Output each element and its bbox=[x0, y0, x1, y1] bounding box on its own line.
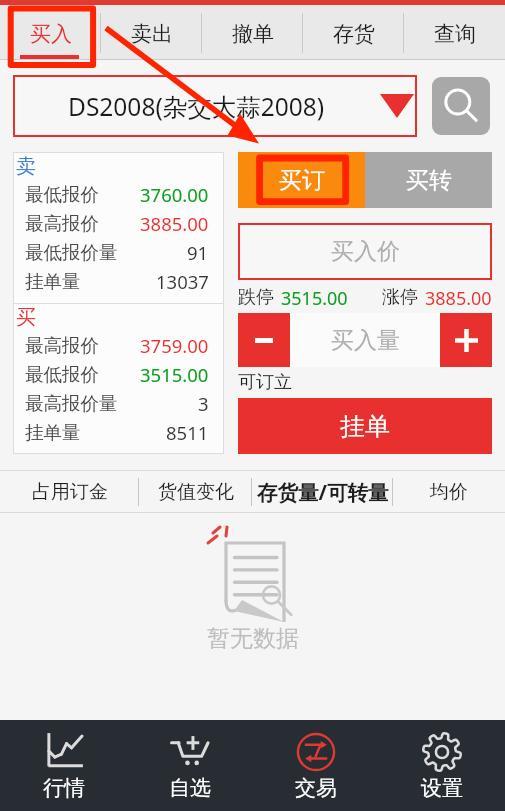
staticText: 最高报价 bbox=[25, 212, 99, 235]
staticText: 均价 bbox=[430, 480, 468, 504]
button[interactable]: 买入价 bbox=[238, 223, 492, 280]
staticText: 买转 bbox=[406, 166, 452, 195]
staticText: 行情 bbox=[43, 775, 85, 801]
staticText: 存货 bbox=[333, 21, 375, 47]
staticText: 买入量 bbox=[331, 326, 400, 355]
staticText: 3515.00 bbox=[281, 286, 348, 308]
button[interactable]: 挂单 bbox=[238, 398, 492, 454]
staticText: 13037 bbox=[156, 269, 209, 294]
staticText: 存货量/可转量 bbox=[257, 478, 389, 506]
button[interactable]: 买入 bbox=[0, 5, 101, 60]
button[interactable]: 占用订金 bbox=[0, 470, 139, 513]
button[interactable]: DS2008(杂交大蒜2008) bbox=[13, 75, 417, 137]
button[interactable]: 卖出 bbox=[101, 5, 202, 60]
button[interactable]: 买入量 bbox=[290, 313, 440, 367]
staticText: 查询 bbox=[434, 21, 476, 47]
staticText: 最低报价 bbox=[25, 363, 99, 386]
staticText: 买 bbox=[16, 305, 36, 330]
staticText: 买订 bbox=[279, 166, 325, 195]
staticText: 3515.00 bbox=[140, 362, 209, 387]
staticText: 挂单量 bbox=[25, 270, 81, 293]
staticText: 买入价 bbox=[331, 237, 400, 266]
button[interactable]: 自选 bbox=[127, 720, 253, 811]
staticText: 卖 bbox=[16, 154, 36, 179]
staticText: 3759.00 bbox=[140, 333, 209, 358]
staticText: 8511 bbox=[166, 420, 209, 445]
button[interactable]: 存货量/可转量 bbox=[252, 470, 393, 513]
button[interactable]: 行情 bbox=[0, 720, 127, 811]
staticText: 3885.00 bbox=[140, 211, 209, 236]
staticText: 挂单量 bbox=[25, 421, 81, 444]
staticText: 占用订金 bbox=[32, 480, 108, 504]
staticText: 最低报价量 bbox=[25, 241, 118, 264]
staticText: 卖出 bbox=[131, 21, 173, 47]
button[interactable]: 均价 bbox=[393, 470, 505, 513]
button[interactable]: 存货 bbox=[303, 5, 404, 60]
button[interactable]: Decrease bbox=[238, 313, 290, 367]
button[interactable]: 撤单 bbox=[202, 5, 303, 60]
staticText: 最低报价 bbox=[25, 183, 99, 206]
staticText: 3760.00 bbox=[140, 182, 209, 207]
staticText: 91 bbox=[187, 240, 209, 265]
staticText: 最高报价量 bbox=[25, 392, 118, 415]
staticText: 自选 bbox=[169, 775, 211, 801]
staticText: 交易 bbox=[295, 775, 337, 801]
staticText: 涨停 bbox=[382, 286, 418, 308]
button[interactable]: Search bbox=[432, 77, 490, 135]
staticText: 3 bbox=[198, 391, 209, 416]
staticText: 3885.00 bbox=[425, 286, 492, 308]
button[interactable]: 查询 bbox=[404, 5, 505, 60]
staticText: 可订立 bbox=[238, 371, 292, 393]
staticText: DS2008(杂交大蒜2008) bbox=[68, 90, 325, 123]
staticText: 最高报价 bbox=[25, 334, 99, 357]
button[interactable]: 货值变化 bbox=[139, 470, 252, 513]
staticText: 货值变化 bbox=[158, 480, 234, 504]
staticText: 暂无数据 bbox=[207, 624, 299, 653]
button[interactable]: 设置 bbox=[379, 720, 505, 811]
staticText: 设置 bbox=[421, 775, 463, 801]
button[interactable]: 买订 bbox=[238, 152, 365, 208]
staticText: 跌停 bbox=[238, 286, 274, 308]
staticText: 买入 bbox=[30, 21, 72, 47]
button[interactable]: Increase bbox=[440, 313, 492, 367]
staticText: 挂单 bbox=[340, 411, 390, 442]
button[interactable]: 买转 bbox=[365, 152, 492, 208]
staticText: 撤单 bbox=[232, 21, 274, 47]
button[interactable]: 交易 bbox=[253, 720, 379, 811]
